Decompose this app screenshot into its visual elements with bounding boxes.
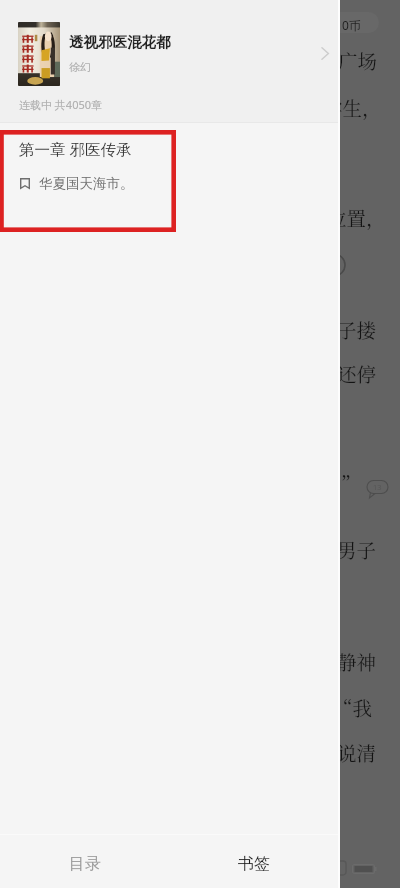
staticText: 男子 <box>337 536 377 564</box>
staticText: 子搂 <box>337 316 377 344</box>
staticText: “我 <box>333 694 373 722</box>
staticText: 静神 <box>337 648 377 676</box>
staticText: 说清 <box>337 739 377 767</box>
staticText: 13 <box>373 482 382 492</box>
staticText: 学生， <box>323 94 382 122</box>
staticText: 书签 <box>238 854 270 874</box>
staticText: 第一章 邪医传承 <box>19 138 132 159</box>
staticText: 连载中 共4050章 <box>19 97 103 112</box>
staticText: 华夏国天海市。 <box>39 175 134 192</box>
button[interactable]: 书签 <box>169 835 338 888</box>
button[interactable]: 目录 <box>0 835 169 888</box>
staticText: 透视邪医混花都 <box>69 33 171 51</box>
other: Open book detail <box>316 45 333 62</box>
staticText: ” <box>341 470 361 498</box>
staticText: 位置， <box>327 204 386 232</box>
button[interactable]: 透视邪医混花都 <box>0 0 338 122</box>
staticText: 0币 <box>342 17 361 33</box>
staticText: 还停 <box>337 360 377 388</box>
staticText: 徐幻 <box>69 60 91 74</box>
staticText: 目录 <box>69 854 101 874</box>
button[interactable]: 第一章 邪医传承 <box>0 130 338 231</box>
staticText: 广场 <box>338 47 378 75</box>
